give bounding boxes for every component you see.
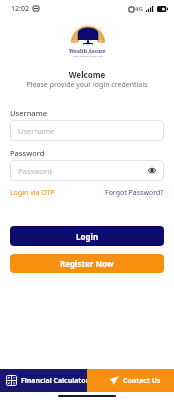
staticText: Password (10, 148, 45, 158)
button[interactable]: Username (10, 120, 164, 141)
staticText: 12:02 (11, 4, 29, 14)
staticText: 4G (135, 5, 143, 13)
staticText: Password (18, 166, 52, 176)
staticText: Register Now (60, 258, 114, 269)
staticText: Username (18, 126, 55, 136)
staticText: Wealth Assure (69, 48, 106, 55)
staticText: a unit of Wealth Assure Corp (73, 55, 103, 58)
button[interactable]: Register Now (10, 254, 164, 273)
other: Show password (148, 168, 156, 173)
staticText: Please provide your login credentials (0, 80, 174, 90)
button[interactable]: Forgot Password? (105, 188, 164, 198)
staticText: Login (76, 231, 99, 242)
staticText: Username (10, 108, 48, 118)
staticText: Login via OTP (10, 188, 55, 198)
button[interactable]: Login (10, 226, 164, 246)
staticText: Forgot Password? (105, 188, 164, 198)
button[interactable]: Contact Us (87, 369, 174, 392)
staticText: Welcome (0, 69, 174, 80)
button[interactable]: Login via OTP (10, 188, 55, 198)
button[interactable]: Financial Calculators (0, 369, 87, 392)
staticText: Financial Calculators (21, 376, 87, 385)
button[interactable]: Password (10, 160, 164, 181)
staticText: Contact Us (123, 376, 161, 385)
